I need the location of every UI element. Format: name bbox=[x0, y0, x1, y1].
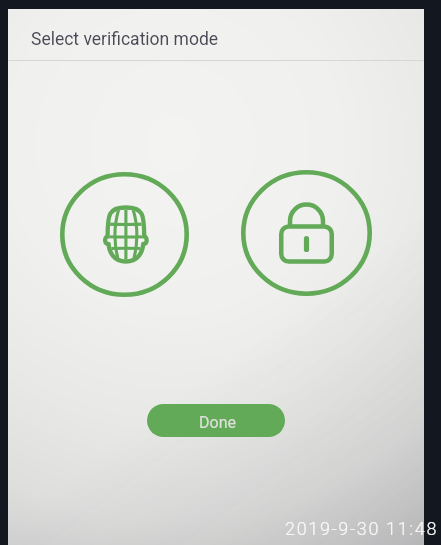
button[interactable]: Done bbox=[147, 404, 285, 437]
staticText: Select verification mode bbox=[31, 29, 219, 50]
staticText: Done bbox=[199, 413, 236, 432]
button[interactable]: Password verification bbox=[241, 170, 372, 296]
button[interactable]: Face verification bbox=[60, 172, 189, 297]
staticText: 2019-9-30 11:48 bbox=[285, 518, 439, 539]
